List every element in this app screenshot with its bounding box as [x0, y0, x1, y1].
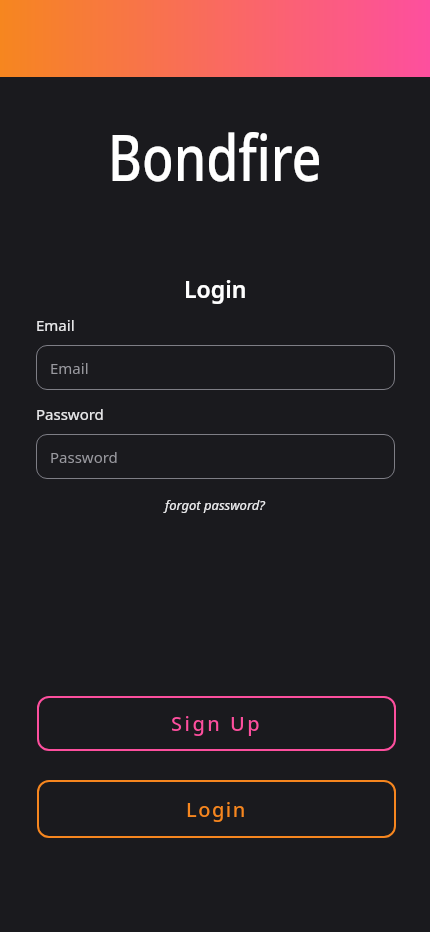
button[interactable]: Email — [36, 345, 395, 390]
button[interactable]: Login — [37, 780, 396, 838]
staticText: Password — [50, 447, 118, 467]
staticText: Login — [184, 273, 247, 304]
staticText: Email — [36, 315, 75, 335]
staticText: Email — [50, 358, 89, 378]
staticText: Password — [36, 404, 104, 424]
staticText: Sign Up — [171, 710, 263, 737]
button[interactable]: Password — [36, 434, 395, 479]
staticText: Bondfire — [108, 113, 322, 200]
button[interactable]: Sign Up — [37, 696, 396, 751]
button[interactable]: forgot password? — [0, 495, 430, 515]
staticText: forgot password? — [165, 496, 265, 514]
staticText: Login — [186, 796, 247, 823]
